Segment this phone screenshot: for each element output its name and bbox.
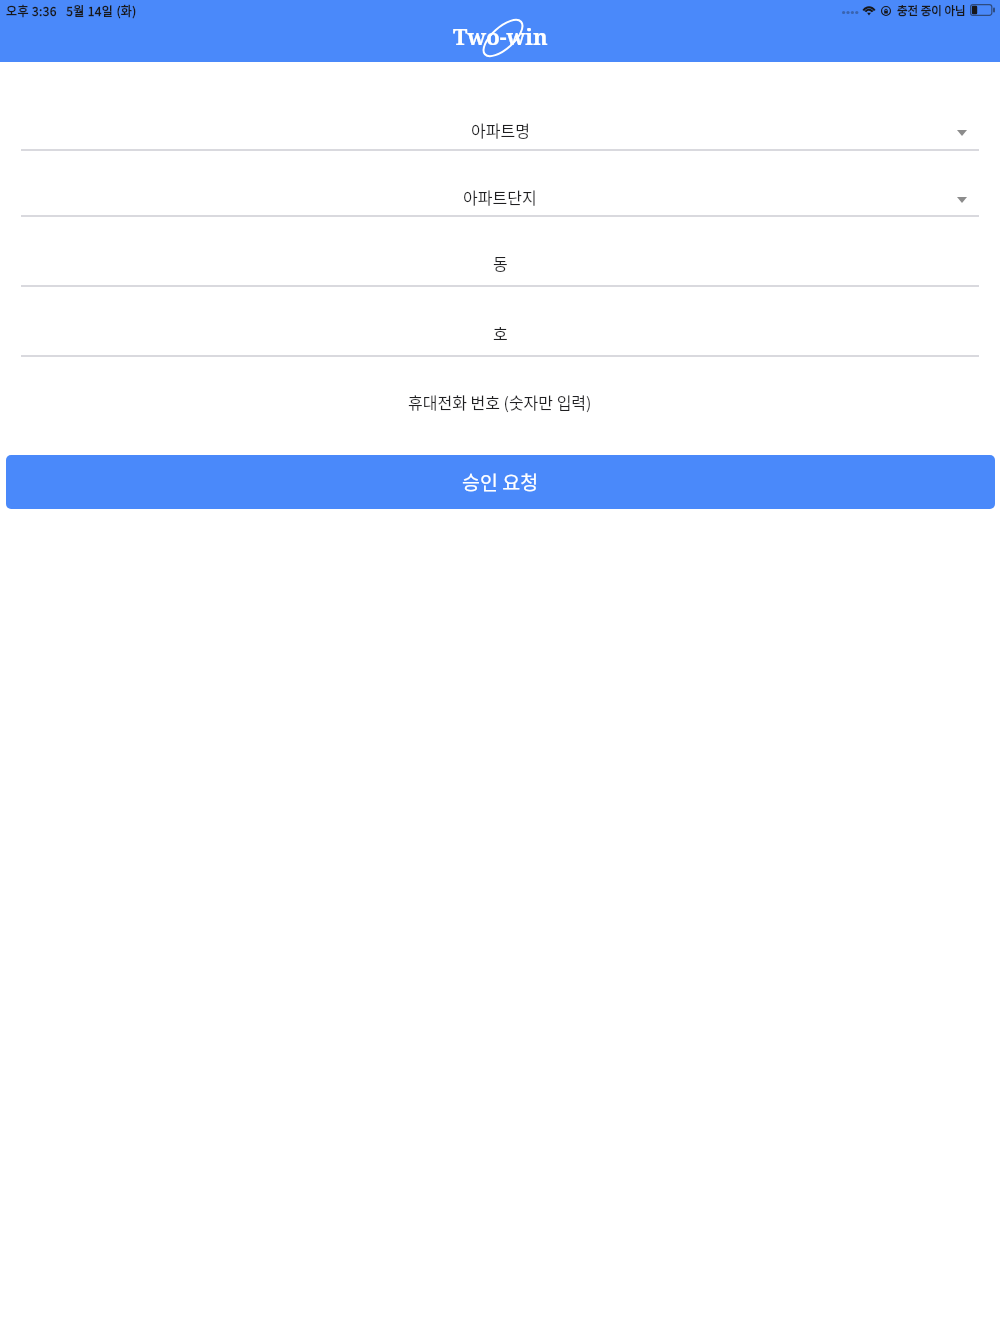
button[interactable]: 휴대전화 번호 (숫자만 입력) [0,377,1000,425]
staticText: 오후 3:36 5월 14일 (화) [6,2,137,19]
button[interactable]: 승인 요청 [6,455,995,509]
staticText: 동 [493,251,508,274]
staticText: 호 [493,321,508,344]
other: 목록 열기 [957,197,967,203]
other: 배터리 [970,4,996,16]
other: 신호 [842,6,858,16]
other: 목록 열기 [957,130,967,136]
button[interactable]: 아파트단지 [0,172,1000,220]
staticText: Two-win [453,21,548,51]
staticText: 충전 중이 아님 [897,2,966,19]
button[interactable]: 아파트명 [0,105,1000,153]
button[interactable]: 동 [0,238,1000,286]
staticText: 아파트명 [471,118,530,141]
staticText: 휴대전화 번호 (숫자만 입력) [408,390,592,413]
other: 화면 회전 잠금 [881,6,891,16]
staticText: 아파트단지 [463,185,537,208]
staticText: 승인 요청 [462,467,539,495]
button[interactable]: 호 [0,308,1000,356]
other: Wi-Fi [862,5,876,16]
